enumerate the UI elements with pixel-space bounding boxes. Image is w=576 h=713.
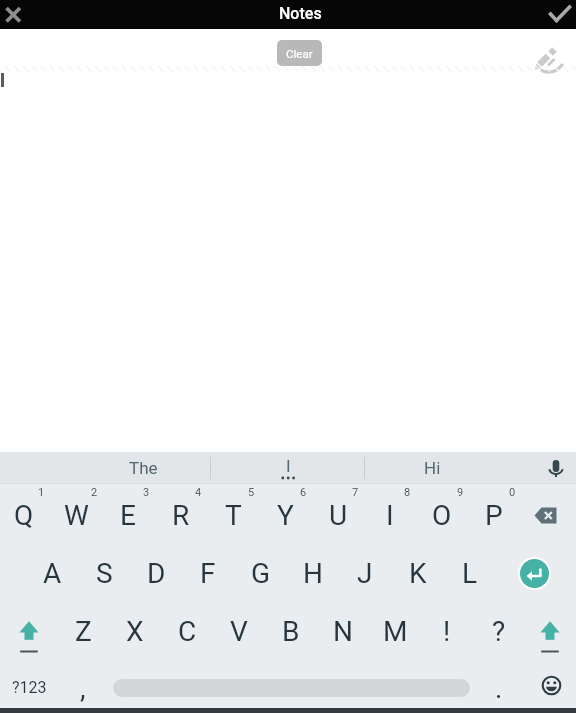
button[interactable]: P	[470, 491, 518, 539]
button[interactable]: B	[267, 607, 315, 655]
button[interactable]: A	[28, 549, 76, 597]
button[interactable]	[520, 559, 549, 588]
button[interactable]	[539, 673, 564, 698]
button[interactable]: V	[215, 607, 263, 655]
staticText: D	[147, 557, 166, 590]
staticText: R	[172, 499, 190, 532]
button[interactable]: ?	[475, 607, 523, 655]
button[interactable]: L	[446, 549, 494, 597]
staticText: M	[383, 615, 408, 648]
button[interactable]: S	[80, 549, 128, 597]
staticText: S	[96, 557, 113, 590]
button[interactable]: .	[475, 664, 523, 712]
button[interactable]: E	[104, 491, 152, 539]
staticText: Clear	[286, 47, 313, 60]
staticText: 5	[248, 486, 255, 499]
staticText: P	[485, 499, 503, 532]
button[interactable]: Q	[0, 491, 48, 539]
button[interactable]: I	[268, 452, 308, 480]
staticText: Y	[277, 499, 294, 532]
button[interactable]	[4, 607, 54, 657]
button[interactable]: J	[341, 549, 389, 597]
staticText: 1	[38, 486, 45, 499]
staticText: T	[225, 499, 242, 532]
button[interactable]: N	[319, 607, 367, 655]
button[interactable]	[525, 607, 575, 657]
staticText: 6	[300, 486, 307, 499]
button[interactable]: K	[394, 549, 442, 597]
button[interactable]: H	[289, 549, 337, 597]
staticText: I	[286, 456, 291, 476]
button[interactable]: Y	[261, 491, 309, 539]
staticText: E	[120, 499, 136, 532]
button[interactable]: U	[314, 491, 362, 539]
button[interactable]: !	[423, 607, 471, 655]
staticText: 0	[509, 486, 516, 499]
button[interactable]	[546, 1, 574, 29]
button[interactable]: The	[73, 453, 213, 483]
button[interactable]: O	[418, 491, 466, 539]
button[interactable]: T	[209, 491, 257, 539]
staticText: 2	[91, 486, 98, 499]
staticText: 4	[195, 486, 202, 499]
staticText: 8	[404, 486, 411, 499]
button[interactable]	[2, 3, 26, 27]
staticText: I	[386, 499, 394, 532]
staticText: N	[333, 615, 353, 648]
staticText: ?123	[12, 678, 47, 697]
staticText: U	[329, 499, 348, 532]
staticText: 3	[143, 486, 150, 499]
staticText: V	[230, 615, 248, 648]
button[interactable]: M	[371, 607, 419, 655]
button[interactable]: ?123	[1, 663, 57, 711]
staticText: X	[126, 615, 144, 648]
staticText: Notes	[279, 4, 322, 23]
staticText: Hi	[424, 458, 441, 478]
staticText: Q	[14, 499, 34, 532]
button[interactable]: F	[184, 549, 232, 597]
staticText: B	[282, 615, 300, 648]
staticText: The	[129, 458, 158, 478]
button[interactable]: Z	[59, 607, 107, 655]
staticText: A	[43, 557, 62, 590]
staticText: G	[251, 557, 271, 590]
button[interactable]: C	[163, 607, 211, 655]
staticText: J	[357, 557, 373, 590]
staticText: H	[303, 557, 323, 590]
staticText: 7	[352, 486, 359, 499]
button[interactable]	[544, 456, 568, 480]
button[interactable]: Hi	[362, 453, 502, 483]
staticText: K	[409, 557, 427, 590]
staticText: C	[178, 615, 197, 648]
staticText: ?	[492, 615, 506, 648]
button[interactable]: G	[237, 549, 285, 597]
staticText: !	[443, 615, 451, 648]
staticText: O	[432, 499, 452, 532]
button[interactable]: W	[52, 491, 100, 539]
button[interactable]: ,	[59, 664, 107, 712]
button[interactable]	[531, 40, 565, 74]
staticText: F	[200, 557, 216, 590]
button[interactable]: Clear	[277, 40, 322, 66]
staticText: .	[495, 672, 503, 705]
button[interactable]: R	[157, 491, 205, 539]
button[interactable]	[522, 490, 572, 540]
staticText: 9	[457, 486, 464, 499]
staticText: L	[462, 557, 478, 590]
staticText: Z	[75, 615, 92, 648]
staticText: ,	[80, 672, 86, 705]
button[interactable]: X	[111, 607, 159, 655]
button[interactable]: D	[132, 549, 180, 597]
staticText: W	[64, 499, 89, 532]
button[interactable]: I	[366, 491, 414, 539]
